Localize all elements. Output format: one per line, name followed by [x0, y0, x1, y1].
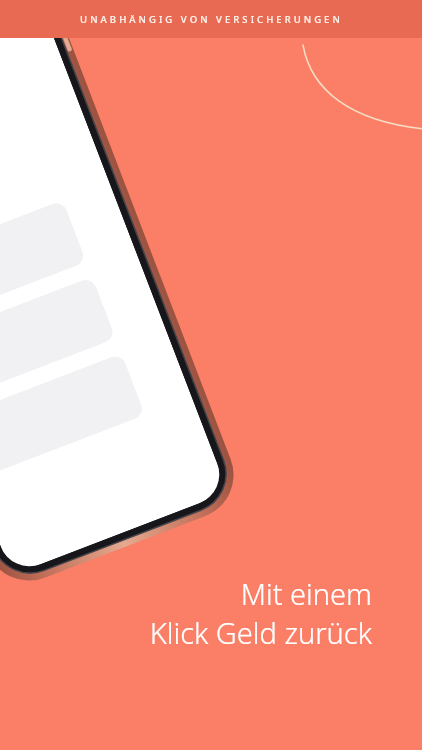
button[interactable]: Unabhängig von Versicherungen	[0, 0, 422, 38]
staticText: Klick Geld zurück	[0, 613, 372, 652]
staticText: UNABHÄNGIG VON VERSICHERUNGEN	[80, 13, 343, 26]
staticText: Mit einem	[0, 574, 372, 613]
